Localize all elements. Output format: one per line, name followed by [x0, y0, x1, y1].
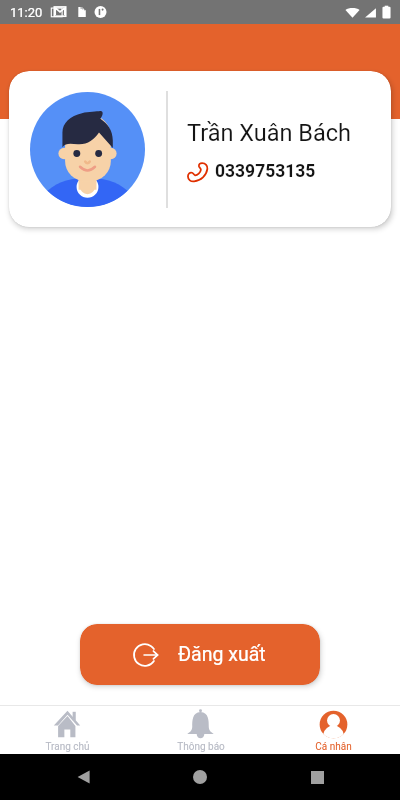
- button[interactable]: Cá nhân: [267, 707, 400, 753]
- staticText: Trần Xuân Bách: [187, 119, 351, 147]
- staticText: Thông báo: [177, 741, 225, 753]
- staticText: 0339753135: [215, 161, 316, 182]
- staticText: Đăng xuất: [178, 643, 266, 666]
- staticText: Trang chủ: [45, 741, 90, 753]
- staticText: 11:20: [10, 5, 43, 20]
- button[interactable]: Trang chủ: [0, 707, 134, 753]
- button[interactable]: Trần Xuân Bách: [9, 71, 391, 227]
- button[interactable]: Thông báo: [134, 707, 267, 753]
- button[interactable]: Đăng xuất: [80, 624, 320, 685]
- staticText: Cá nhân: [315, 741, 352, 753]
